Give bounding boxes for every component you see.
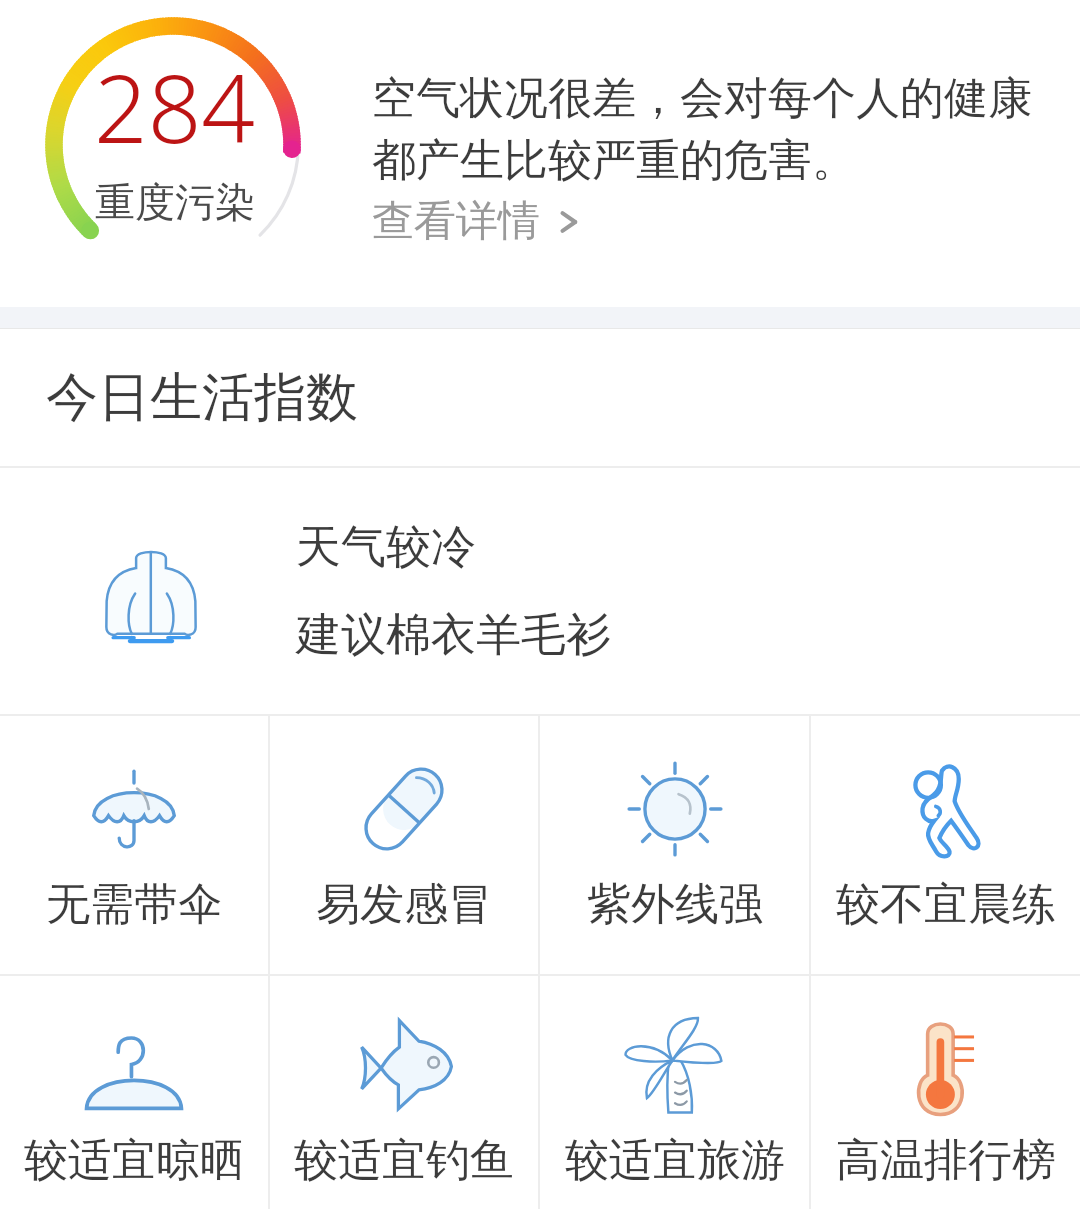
button[interactable]: 较不宜晨练 bbox=[811, 716, 1080, 974]
staticText: 重度污染 bbox=[95, 177, 255, 227]
staticText: 较适宜旅游 bbox=[565, 1133, 785, 1188]
staticText: 紫外线强 bbox=[587, 877, 763, 932]
staticText: 较适宜晾晒 bbox=[24, 1133, 244, 1188]
button[interactable]: 易发感冒 bbox=[270, 716, 538, 974]
button[interactable]: 天气较冷 bbox=[0, 468, 1080, 714]
staticText: 较适宜钓鱼 bbox=[294, 1133, 514, 1188]
button[interactable]: 无需带伞 bbox=[0, 716, 268, 974]
button[interactable]: 较适宜晾晒 bbox=[0, 976, 268, 1209]
button[interactable]: 紫外线强 bbox=[540, 716, 809, 974]
button[interactable]: 较适宜钓鱼 bbox=[270, 976, 538, 1209]
staticText: 今日生活指数 bbox=[46, 365, 358, 431]
button[interactable]: 较适宜旅游 bbox=[540, 976, 809, 1209]
button[interactable]: 空气质量指数 284 重度污染 bbox=[0, 0, 350, 307]
staticText: 空气状况很差，会对每个人的健康 都产生比较严重的危害。 bbox=[372, 71, 1032, 188]
button[interactable]: 高温排行榜 bbox=[811, 976, 1080, 1209]
button[interactable]: 查看详情 bbox=[372, 195, 582, 248]
staticText: 建议棉衣羊毛衫 bbox=[296, 607, 611, 664]
staticText: 查看详情 bbox=[372, 195, 540, 248]
staticText: 天气较冷 bbox=[296, 519, 476, 576]
staticText: 较不宜晨练 bbox=[836, 877, 1056, 932]
staticText: 284 bbox=[94, 43, 256, 171]
staticText: 高温排行榜 bbox=[836, 1133, 1056, 1188]
staticText: 无需带伞 bbox=[46, 877, 222, 932]
staticText: 易发感冒 bbox=[316, 877, 492, 932]
